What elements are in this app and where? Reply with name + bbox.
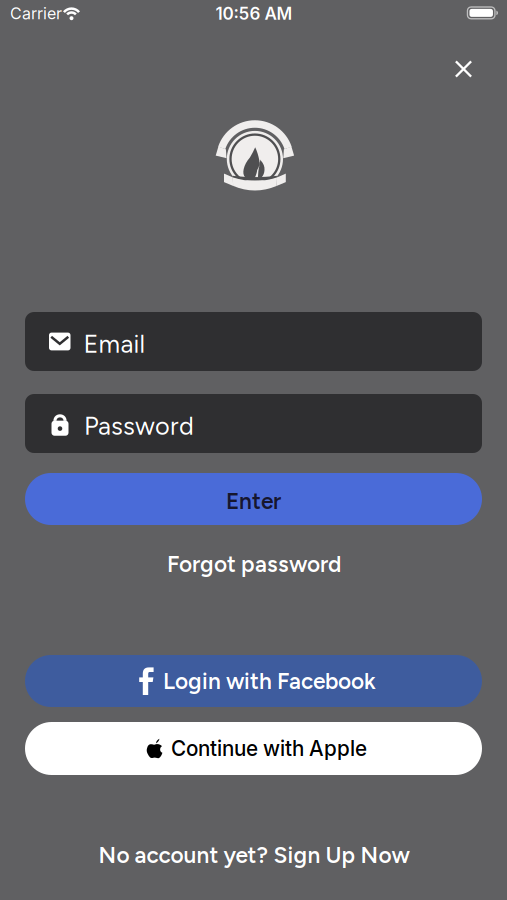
staticText: Continue with Apple — [171, 736, 367, 761]
staticText: No account yet? Sign Up Now — [98, 841, 409, 869]
staticText: Forgot password — [167, 550, 341, 578]
button[interactable]: Enter — [25, 473, 482, 525]
button[interactable]: No account yet? Sign Up Now — [98, 841, 409, 869]
staticText: Enter — [226, 487, 281, 515]
staticText: 10:56 AM — [215, 3, 292, 24]
button[interactable]: Email — [25, 312, 482, 371]
staticText: Login with Facebook — [163, 667, 376, 695]
button[interactable]: Login with Facebook — [25, 655, 482, 707]
staticText: Password — [84, 411, 194, 441]
button[interactable]: Password — [25, 394, 482, 453]
button[interactable]: Continue with Apple — [25, 722, 482, 775]
button[interactable] — [441, 47, 485, 91]
staticText: Email — [83, 329, 145, 359]
button[interactable]: Forgot password — [167, 550, 341, 578]
staticText: Carrier — [10, 4, 62, 23]
